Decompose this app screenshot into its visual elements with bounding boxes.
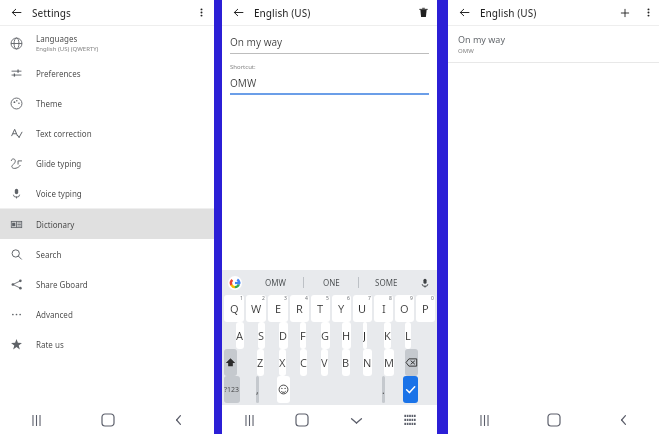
staticText: J — [363, 328, 367, 343]
button[interactable]: Home — [97, 409, 119, 431]
button[interactable]: Voice typing — [0, 178, 214, 208]
button[interactable]: Recent apps — [473, 409, 495, 431]
button[interactable]: Preferences — [0, 58, 214, 88]
button[interactable]: More options — [188, 0, 214, 25]
button[interactable]: More options — [637, 0, 659, 25]
staticText: A — [236, 328, 244, 343]
button[interactable]: P — [416, 295, 435, 322]
staticText: G — [321, 328, 330, 343]
button[interactable]: L — [405, 322, 411, 349]
button[interactable]: N — [363, 349, 372, 376]
staticText: Rate us — [36, 339, 64, 350]
staticText: ?123 — [224, 385, 240, 395]
button[interactable]: J — [363, 322, 367, 349]
button[interactable]: Advanced — [0, 299, 214, 329]
staticText: Glide typing — [36, 158, 82, 169]
button[interactable]: ?123 — [224, 376, 240, 403]
staticText: ONE — [323, 277, 340, 288]
button[interactable]: M — [384, 349, 394, 376]
staticText: E — [275, 301, 282, 316]
button[interactable]: Languages — [0, 28, 214, 58]
staticText: On my way — [458, 33, 505, 45]
staticText: Voice typing — [36, 188, 82, 199]
button[interactable]: O — [395, 295, 414, 322]
button[interactable]: ONE — [304, 270, 358, 295]
button[interactable]: Theme — [0, 88, 214, 118]
button[interactable]: C — [300, 349, 307, 376]
staticText: P — [422, 301, 429, 316]
button[interactable]: Z — [257, 349, 264, 376]
button[interactable] — [403, 376, 418, 403]
button[interactable]: K — [384, 322, 391, 349]
button[interactable]: Recent apps — [238, 409, 260, 431]
staticText: L — [405, 328, 411, 343]
button[interactable]: Voice input — [413, 270, 437, 295]
staticText: 2 — [262, 295, 265, 302]
button[interactable]: OMW — [248, 270, 303, 295]
staticText: X — [279, 355, 286, 370]
staticText: SOME — [375, 277, 398, 288]
button[interactable]: H — [342, 322, 351, 349]
button[interactable] — [224, 349, 237, 376]
staticText: 3 — [284, 295, 287, 302]
button[interactable]: Y — [332, 295, 351, 322]
staticText: Theme — [36, 98, 62, 109]
staticText: V — [321, 355, 328, 370]
button[interactable]: R — [290, 295, 309, 322]
button[interactable]: A — [236, 322, 244, 349]
button[interactable]: Hide keyboard — [345, 409, 367, 431]
staticText: Search — [36, 249, 62, 260]
button[interactable]: E — [268, 295, 288, 322]
button[interactable]: S — [258, 322, 265, 349]
button[interactable]: Share Gboard — [0, 269, 214, 299]
staticText: C — [300, 355, 307, 370]
button[interactable]: I — [374, 295, 393, 322]
button[interactable]: F — [300, 322, 306, 349]
button[interactable]: V — [321, 349, 328, 376]
button[interactable]: On my way — [448, 26, 659, 62]
staticText: Advanced — [36, 309, 73, 320]
staticText: 1 — [240, 295, 243, 302]
button[interactable]: D — [279, 322, 288, 349]
staticText: On my way — [230, 35, 283, 49]
staticText: 5 — [326, 295, 329, 302]
button[interactable]: Dictionary — [0, 209, 214, 239]
button[interactable]: Delete — [409, 0, 437, 25]
button[interactable]: G — [321, 322, 330, 349]
staticText: Dictionary — [36, 219, 75, 230]
button[interactable]: Back — [613, 409, 635, 431]
staticText: I — [382, 301, 386, 316]
button[interactable] — [405, 349, 418, 376]
button[interactable]: Back — [168, 409, 190, 431]
button[interactable]: Rate us — [0, 329, 214, 359]
staticText: M — [384, 355, 394, 370]
button[interactable]: T — [311, 295, 330, 322]
button[interactable]: Back — [222, 0, 254, 25]
button[interactable]: B — [342, 349, 350, 376]
button[interactable]: Add — [613, 0, 637, 25]
staticText: Y — [338, 301, 345, 316]
button[interactable]: Recent apps — [25, 409, 47, 431]
button[interactable]: Q — [224, 295, 244, 322]
button[interactable]: Back — [0, 0, 32, 25]
staticText: Languages — [36, 33, 78, 44]
button[interactable]: U — [353, 295, 372, 322]
button[interactable]: Google — [222, 270, 248, 295]
button[interactable]: X — [279, 349, 286, 376]
staticText: D — [279, 328, 288, 343]
button[interactable]: Home — [291, 409, 313, 431]
button[interactable]: Search — [0, 239, 214, 269]
button[interactable]: Glide typing — [0, 148, 214, 178]
button[interactable]: Switch input method — [399, 409, 421, 431]
button[interactable]: Back — [448, 0, 480, 25]
staticText: English (US) (QWERTY) — [36, 45, 99, 53]
button[interactable]: . — [382, 376, 385, 403]
button[interactable]: SOME — [359, 270, 413, 295]
button[interactable]: Text correction — [0, 118, 214, 148]
staticText: 4 — [305, 295, 308, 302]
button[interactable]: W — [246, 295, 266, 322]
button[interactable] — [277, 376, 290, 403]
button[interactable]: , — [256, 376, 259, 403]
staticText: 9 — [410, 295, 413, 302]
button[interactable]: Home — [543, 409, 565, 431]
